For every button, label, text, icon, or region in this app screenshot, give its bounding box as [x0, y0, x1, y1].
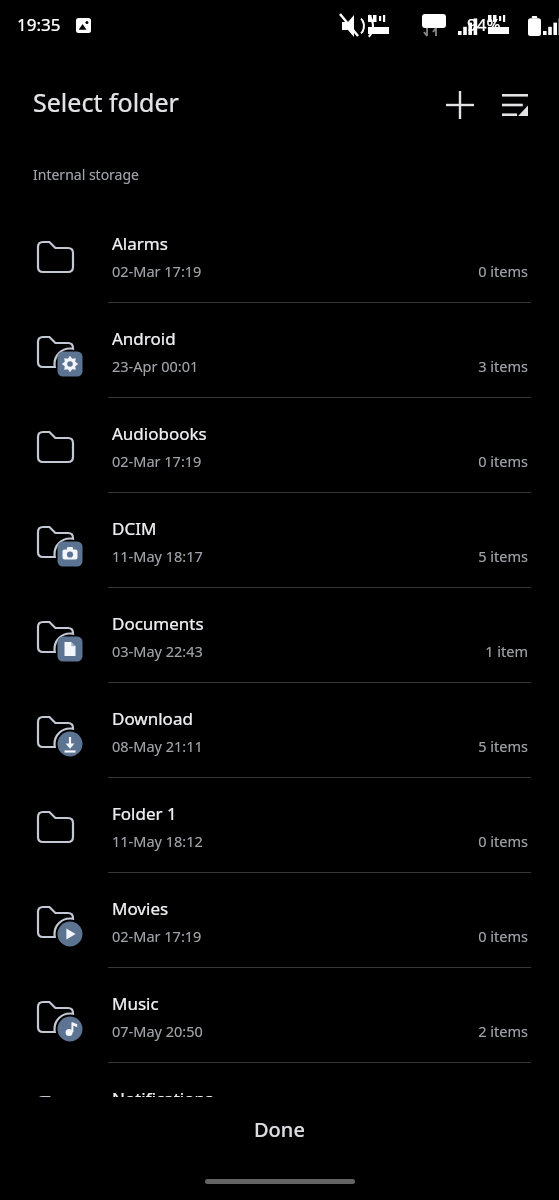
staticText: 94% [467, 13, 501, 36]
button[interactable]: Audiobooks [0, 398, 559, 493]
button[interactable]: Folder 1 [0, 778, 559, 873]
staticText: 11-May 18:12 [112, 831, 203, 851]
staticText: 02-Mar 17:19 [112, 451, 202, 471]
staticText: 07-May 20:50 [112, 1021, 203, 1041]
button[interactable]: Notifications [0, 1063, 559, 1097]
staticText: 19:35 [17, 13, 61, 36]
staticText: Done [254, 1116, 305, 1143]
staticText: 0 items [0, 831, 528, 851]
staticText: 23-Apr 00:01 [112, 356, 199, 376]
staticText: 02-Mar 17:19 [112, 261, 202, 281]
staticText: Android [112, 327, 176, 350]
staticText: 0 items [0, 451, 528, 471]
staticText: Music [112, 992, 159, 1015]
button[interactable]: Done [0, 1098, 559, 1160]
staticText: Documents [112, 612, 204, 635]
staticText: Notifications [112, 1087, 214, 1097]
staticText: 03-May 22:43 [112, 641, 203, 661]
staticText: 3 items [0, 356, 528, 376]
staticText: DCIM [112, 517, 157, 540]
staticText: 5 items [0, 736, 528, 756]
staticText: 11-May 18:17 [112, 546, 203, 566]
staticText: Alarms [112, 232, 168, 255]
button[interactable]: Download [0, 683, 559, 778]
staticText: Folder 1 [112, 802, 177, 825]
button[interactable]: Create new folder [432, 77, 488, 133]
button[interactable]: DCIM [0, 493, 559, 588]
button[interactable]: Alarms [0, 208, 559, 303]
button[interactable]: Movies [0, 873, 559, 968]
staticText: 5 items [0, 546, 528, 566]
staticText: Audiobooks [112, 422, 207, 445]
staticText: 0 items [0, 926, 528, 946]
staticText: 2 items [0, 1021, 528, 1041]
staticText: Movies [112, 897, 169, 920]
button[interactable]: Android [0, 303, 559, 398]
staticText: 0 items [0, 261, 528, 281]
staticText: Internal storage [33, 165, 139, 184]
staticText: 1 item [0, 641, 528, 661]
button[interactable]: Documents [0, 588, 559, 683]
staticText: 02-Mar 17:19 [112, 926, 202, 946]
staticText: Select folder [33, 85, 179, 119]
button[interactable]: Sort [487, 77, 543, 133]
button[interactable]: Music [0, 968, 559, 1063]
staticText: 08-May 21:11 [112, 736, 203, 756]
staticText: Download [112, 707, 193, 730]
